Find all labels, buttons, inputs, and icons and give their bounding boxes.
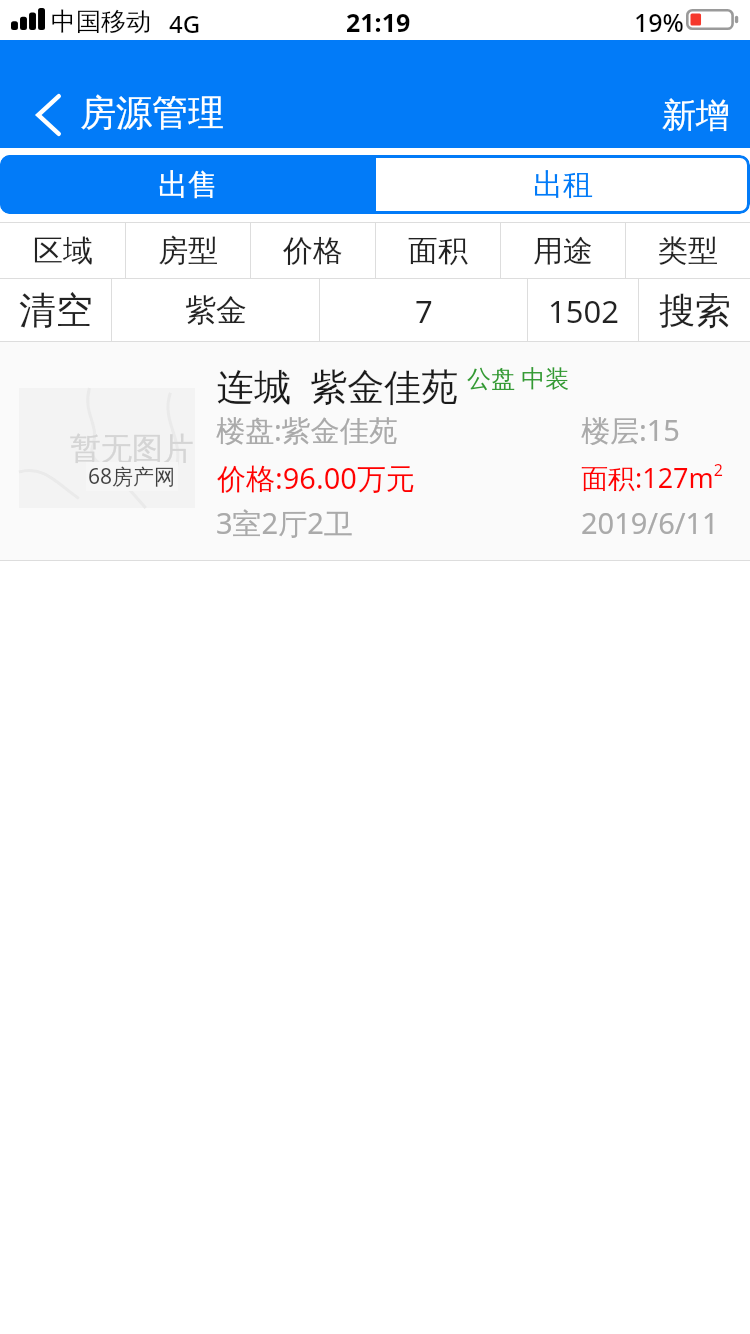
button[interactable]: 搜索 bbox=[639, 279, 750, 342]
button[interactable]: 出租 bbox=[376, 155, 750, 214]
staticText: 类型 bbox=[658, 232, 718, 270]
staticText: 价格:96.00万元 bbox=[217, 458, 415, 498]
staticText: 房型 bbox=[158, 232, 218, 270]
button[interactable]: 紫金 bbox=[112, 279, 319, 342]
staticText: 紫金 bbox=[185, 291, 247, 330]
staticText: 房源管理 bbox=[80, 90, 224, 135]
button[interactable]: 价格 bbox=[251, 222, 375, 279]
button[interactable]: 1502 bbox=[528, 279, 638, 342]
button[interactable]: 类型 bbox=[626, 222, 750, 279]
button[interactable]: Back bbox=[4, 82, 90, 148]
button[interactable]: 面积 bbox=[376, 222, 500, 279]
staticText: 出售 bbox=[158, 166, 218, 204]
staticText: 中国移动 bbox=[51, 6, 151, 37]
staticText: 21:19 bbox=[346, 5, 411, 39]
staticText: 2019/6/11 bbox=[581, 503, 719, 542]
staticText: 价格 bbox=[283, 232, 343, 270]
button[interactable]: 暂无图片 bbox=[0, 342, 750, 561]
button[interactable]: 房型 bbox=[126, 222, 250, 279]
staticText: 楼盘:紫金佳苑 bbox=[216, 410, 398, 450]
staticText: 68房产网 bbox=[88, 462, 176, 491]
button[interactable]: 新增 bbox=[642, 82, 750, 148]
staticText: 面积 bbox=[408, 232, 468, 270]
button[interactable]: 区域 bbox=[0, 222, 125, 279]
staticText: 3室2厅2卫 bbox=[216, 503, 353, 543]
staticText: 出租 bbox=[533, 166, 593, 204]
button[interactable]: 用途 bbox=[501, 222, 625, 279]
staticText: 区域 bbox=[33, 232, 93, 270]
staticText: 公盘 中装 bbox=[467, 361, 570, 394]
staticText: 19% bbox=[634, 5, 684, 39]
staticText: 暂无图片 bbox=[70, 429, 194, 468]
staticText: 4G bbox=[169, 7, 201, 40]
button[interactable]: 清空 bbox=[0, 279, 111, 342]
staticText: 1502 bbox=[548, 290, 619, 332]
button[interactable]: 7 bbox=[320, 279, 527, 342]
staticText: 连城 紫金佳苑 bbox=[217, 360, 459, 411]
staticText: 搜索 bbox=[659, 288, 731, 333]
staticText: 用途 bbox=[533, 232, 593, 270]
staticText: 7 bbox=[415, 290, 433, 332]
staticText: 楼层:15 bbox=[581, 410, 680, 450]
staticText: 清空 bbox=[19, 287, 93, 334]
staticText: 面积:127m2 bbox=[581, 459, 723, 496]
staticText: 新增 bbox=[662, 94, 730, 137]
button[interactable]: 出售 bbox=[0, 155, 376, 214]
